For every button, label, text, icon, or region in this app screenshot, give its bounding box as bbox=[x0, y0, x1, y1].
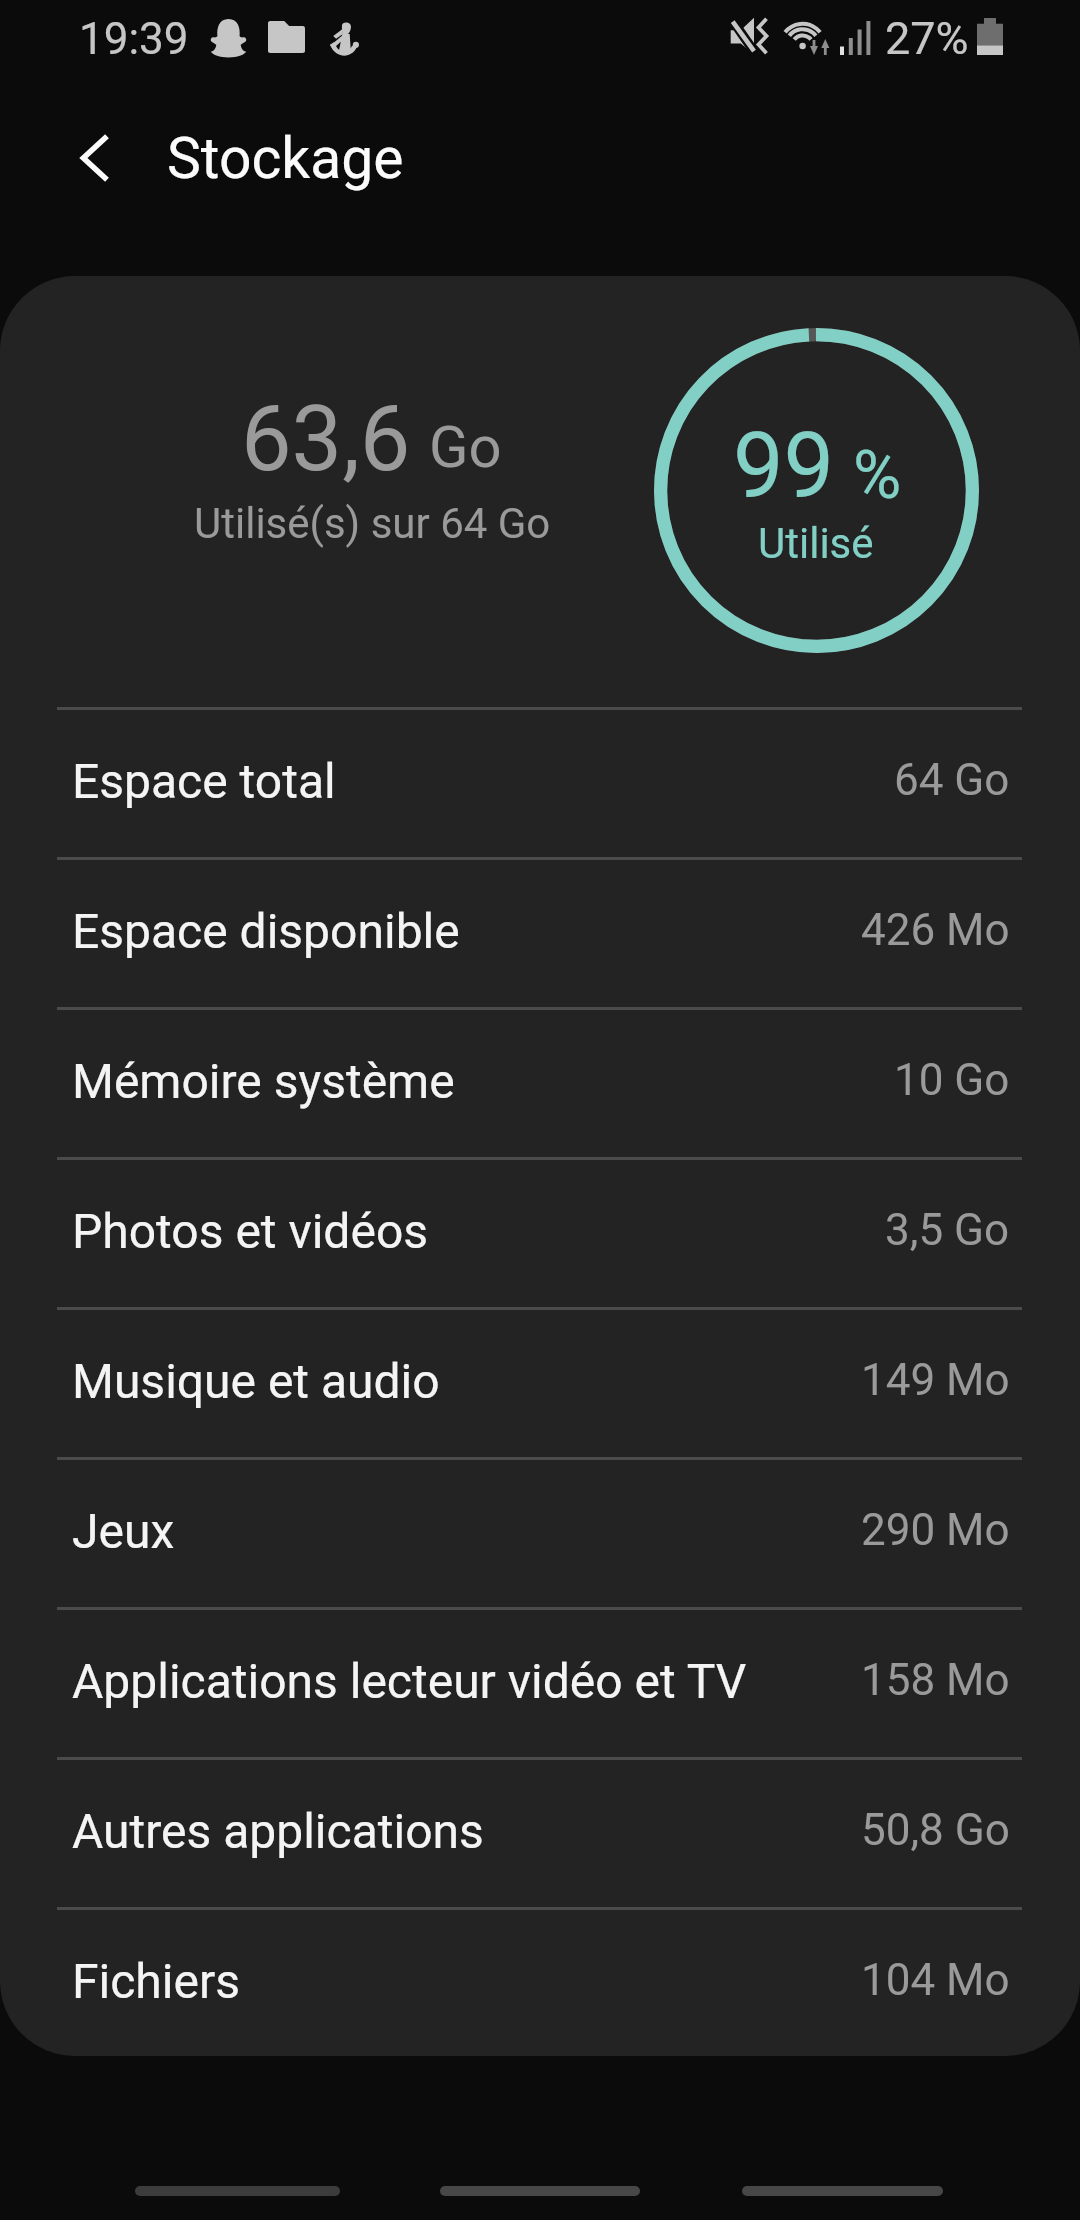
staticText: 63,6 bbox=[241, 387, 411, 492]
staticText: Espace total bbox=[72, 753, 336, 809]
staticText: 50,8 Go bbox=[861, 1804, 1010, 1856]
staticText: Espace disponible bbox=[72, 903, 460, 959]
button[interactable]: Espace disponible bbox=[0, 860, 1080, 1007]
staticText: 290 Mo bbox=[861, 1504, 1010, 1556]
staticText: % bbox=[853, 437, 902, 514]
button[interactable]: Jeux bbox=[0, 1460, 1080, 1607]
staticText: 64 Go bbox=[894, 754, 1010, 806]
button[interactable]: Recents bbox=[135, 2186, 340, 2196]
button[interactable]: Photos et vidéos bbox=[0, 1160, 1080, 1307]
staticText: 3,5 Go bbox=[885, 1204, 1010, 1256]
staticText: 426 Mo bbox=[861, 904, 1010, 956]
staticText: Photos et vidéos bbox=[72, 1203, 429, 1259]
button[interactable]: Back bbox=[47, 110, 143, 206]
staticText: Utilisé bbox=[758, 519, 874, 568]
button[interactable]: Home bbox=[440, 2186, 640, 2196]
staticText: Musique et audio bbox=[72, 1353, 440, 1409]
staticText: Stockage bbox=[167, 125, 404, 192]
staticText: Autres applications bbox=[72, 1803, 484, 1859]
staticText: Applications lecteur vidéo et TV bbox=[72, 1653, 747, 1709]
button[interactable]: Applications lecteur vidéo et TV bbox=[0, 1610, 1080, 1757]
staticText: 104 Mo bbox=[861, 1954, 1010, 2006]
button[interactable]: Mémoire système bbox=[0, 1010, 1080, 1157]
staticText: Mémoire système bbox=[72, 1053, 455, 1109]
staticText: 19:39 bbox=[79, 13, 189, 65]
button[interactable]: Fichiers bbox=[0, 1910, 1080, 2056]
staticText: 149 Mo bbox=[861, 1354, 1010, 1406]
button[interactable]: Espace total bbox=[0, 710, 1080, 857]
staticText: Fichiers bbox=[72, 1953, 240, 2009]
staticText: 10 Go bbox=[894, 1054, 1010, 1106]
staticText: Utilisé(s) sur 64 Go bbox=[194, 499, 551, 548]
staticText: 27% bbox=[885, 12, 969, 65]
button[interactable]: Autres applications bbox=[0, 1760, 1080, 1907]
staticText: Jeux bbox=[72, 1503, 175, 1559]
button[interactable]: Musique et audio bbox=[0, 1310, 1080, 1457]
staticText: 99 bbox=[733, 414, 835, 519]
button[interactable]: Back bbox=[742, 2186, 943, 2196]
staticText: 158 Mo bbox=[861, 1654, 1010, 1706]
staticText: Go bbox=[429, 413, 502, 481]
